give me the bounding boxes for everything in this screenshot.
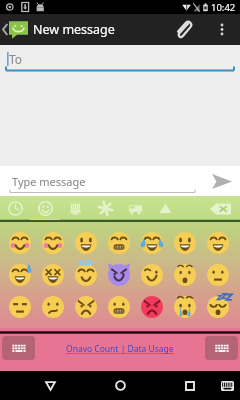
button[interactable]: Emoji 6 xyxy=(168,227,201,259)
button[interactable]: Attach xyxy=(168,14,198,45)
button[interactable]: Keyboard xyxy=(2,336,35,360)
button[interactable]: Symbols xyxy=(150,196,180,221)
button[interactable]: Objects xyxy=(90,196,120,221)
staticText: Onavo Count | Data Usage xyxy=(66,343,174,355)
button[interactable]: Emoji 18 xyxy=(102,291,135,323)
button[interactable]: Emoji 11 xyxy=(102,259,135,291)
button[interactable]: Emoji 1 xyxy=(3,227,36,259)
staticText: 10:42 xyxy=(211,1,236,14)
button[interactable]: Emoji 2 xyxy=(36,227,69,259)
button[interactable]: Back xyxy=(36,371,64,400)
button[interactable]: Smileys xyxy=(30,196,60,221)
button[interactable]: Emoji 19 xyxy=(135,291,168,323)
button[interactable]: Emoji 21 xyxy=(201,291,234,323)
staticText: Type message xyxy=(12,174,86,189)
button[interactable]: Emoji 9 xyxy=(36,259,69,291)
button[interactable]: Emoji 3 xyxy=(69,227,102,259)
button[interactable]: Keyboard xyxy=(205,336,238,360)
button[interactable]: Emoji 16 xyxy=(36,291,69,323)
button[interactable]: Recent apps xyxy=(176,371,204,400)
button[interactable]: Emoji 15 xyxy=(3,291,36,323)
button[interactable]: Onavo Count | Data Usage xyxy=(66,343,174,355)
button[interactable]: Emoji 14 xyxy=(201,259,234,291)
button[interactable]: Emoji 7 xyxy=(201,227,234,259)
button[interactable]: Navigate up xyxy=(0,14,9,45)
button[interactable]: Nature xyxy=(60,196,90,221)
button[interactable]: Send xyxy=(204,166,240,196)
button[interactable]: Switch keyboard xyxy=(216,371,238,400)
staticText: New message xyxy=(33,21,115,38)
button[interactable]: Emoji 4 xyxy=(102,227,135,259)
button[interactable]: Emoji 20 xyxy=(168,291,201,323)
button[interactable]: Emoji 13 xyxy=(168,259,201,291)
button[interactable]: Backspace xyxy=(200,196,240,221)
button[interactable]: Recent xyxy=(0,196,30,221)
button[interactable]: Emoji 17 xyxy=(69,291,102,323)
button[interactable]: More options xyxy=(213,14,231,45)
staticText: To xyxy=(9,51,23,67)
button[interactable]: Emoji 10 xyxy=(69,259,102,291)
button[interactable]: Home xyxy=(106,371,134,400)
button[interactable]: Places xyxy=(120,196,150,221)
button[interactable]: Emoji 12 xyxy=(135,259,168,291)
button[interactable]: Emoji 8 xyxy=(3,259,36,291)
button[interactable]: Emoji 5 xyxy=(135,227,168,259)
